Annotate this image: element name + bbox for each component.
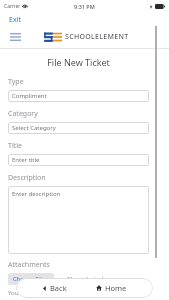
button[interactable]: Enter description bbox=[8, 186, 149, 254]
button[interactable]: Home bbox=[92, 281, 131, 295]
button[interactable]: Menu bbox=[7, 29, 23, 45]
button[interactable]: Enter title bbox=[8, 154, 149, 166]
staticText: Home bbox=[105, 283, 127, 293]
button[interactable]: Compliment bbox=[8, 90, 149, 102]
staticText: Attachments bbox=[8, 260, 50, 270]
staticText: Enter description bbox=[12, 190, 61, 198]
staticText: Compliment bbox=[12, 92, 47, 100]
button[interactable]: Exit bbox=[8, 14, 22, 26]
staticText: Back bbox=[50, 283, 67, 293]
staticText: Select Category bbox=[12, 124, 56, 132]
staticText: Description bbox=[8, 173, 46, 183]
button[interactable]: Back bbox=[38, 281, 71, 295]
staticText: SCHOOLELEMENT bbox=[65, 32, 129, 42]
staticText: Title bbox=[8, 141, 22, 151]
staticText: Enter title bbox=[12, 156, 40, 164]
staticText: File New Ticket bbox=[8, 56, 149, 68]
staticText: Type bbox=[8, 77, 24, 87]
staticText: no files selected bbox=[58, 275, 104, 283]
button[interactable]: Select Category bbox=[8, 122, 149, 134]
staticText: Exit bbox=[9, 15, 21, 25]
staticText: Choose Files bbox=[13, 275, 49, 283]
staticText: You bbox=[8, 289, 19, 297]
staticText: 9:31 PM bbox=[74, 3, 95, 10]
button[interactable]: Choose Files bbox=[8, 273, 54, 285]
staticText: Carrier bbox=[4, 3, 21, 10]
staticText: Category bbox=[8, 109, 38, 119]
